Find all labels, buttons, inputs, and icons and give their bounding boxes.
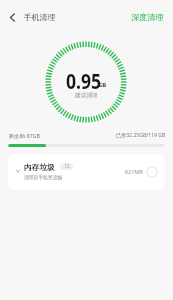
staticText: 12 (64, 163, 70, 170)
staticText: 621MB (125, 168, 143, 175)
staticText: 手机清理 (24, 12, 56, 22)
staticText: 建议清理 (75, 92, 98, 99)
staticText: 0.95 (66, 65, 101, 95)
staticText: 已用32.25GB/119 GB (116, 132, 166, 139)
staticText: 内存垃圾 (24, 163, 55, 173)
button[interactable]: 深度清理 (122, 6, 173, 28)
staticText: 深度清理 (131, 12, 164, 22)
staticText: 清理后手机更流畅 (24, 174, 63, 180)
staticText: GB (98, 81, 107, 89)
staticText: 剩余86.87GB (9, 132, 40, 139)
button[interactable]: Select memory junk (146, 166, 158, 178)
button[interactable]: Collapse section (8, 154, 165, 190)
button[interactable]: Back (1, 6, 24, 29)
button[interactable]: Collapse section (12, 165, 24, 177)
